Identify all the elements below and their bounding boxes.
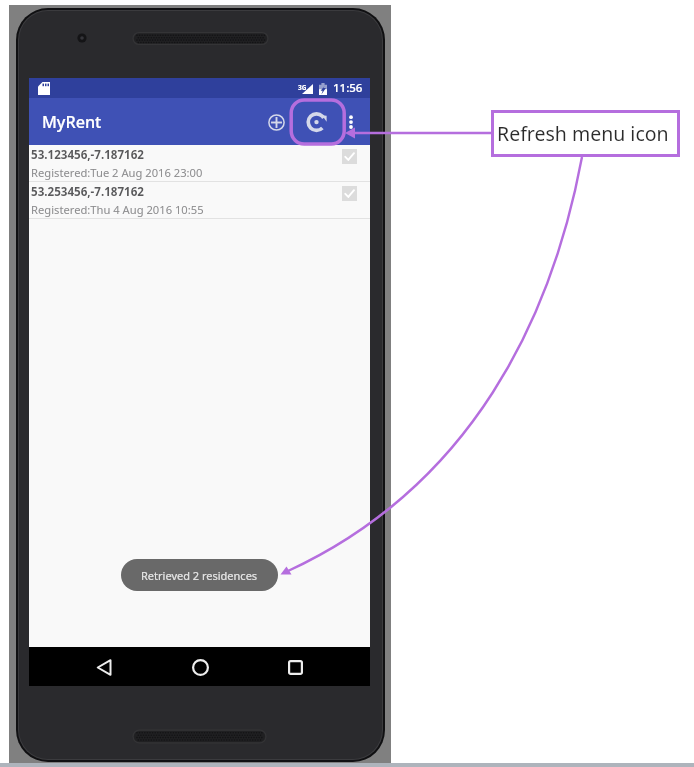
staticText: Registered:Tue 2 Aug 2016 23:00 xyxy=(31,165,203,180)
button[interactable]: More options xyxy=(338,98,364,145)
staticText: 53.123456,-7.187162 xyxy=(31,147,145,163)
staticText: Refresh menu icon xyxy=(497,120,669,147)
button[interactable]: 53.123456,-7.187162 xyxy=(29,145,370,182)
staticText: 11:56 xyxy=(333,80,363,96)
button[interactable]: Refresh xyxy=(293,98,339,145)
button[interactable]: 53.253456,-7.187162 xyxy=(29,182,370,219)
staticText: MyRent xyxy=(42,111,102,133)
button[interactable]: Recents xyxy=(280,652,310,682)
staticText: Registered:Thu 4 Aug 2016 10:55 xyxy=(31,202,204,217)
button[interactable]: Home xyxy=(185,652,215,682)
button[interactable]: Back xyxy=(89,652,119,682)
button[interactable]: Add residence xyxy=(258,103,294,141)
staticText: Retrieved 2 residences xyxy=(141,568,258,583)
staticText: 3G xyxy=(298,83,307,92)
staticText: 53.253456,-7.187162 xyxy=(31,184,145,200)
button[interactable]: Retrieved 2 residences xyxy=(121,559,278,591)
